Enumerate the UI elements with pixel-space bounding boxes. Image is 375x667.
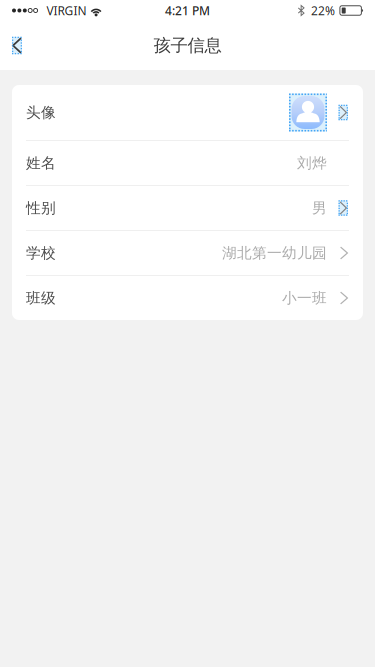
- staticText: 孩子信息: [153, 35, 221, 56]
- button[interactable]: 头像: [12, 85, 363, 140]
- button[interactable]: 姓名: [12, 141, 363, 185]
- staticText: 头像: [26, 103, 56, 121]
- button[interactable]: 性别: [12, 186, 363, 230]
- staticText: 刘烨: [297, 154, 327, 172]
- staticText: 班级: [26, 289, 56, 307]
- staticText: 4:21 PM: [165, 2, 210, 18]
- staticText: 男: [312, 199, 327, 217]
- staticText: 学校: [26, 244, 56, 262]
- button[interactable]: Back: [0, 21, 36, 70]
- staticText: VIRGIN: [47, 2, 87, 18]
- staticText: 姓名: [26, 154, 56, 172]
- staticText: 性别: [26, 199, 56, 217]
- staticText: 湖北第一幼儿园: [222, 244, 327, 262]
- button[interactable]: 班级: [12, 276, 363, 320]
- staticText: 小一班: [282, 289, 327, 307]
- staticText: 22%: [311, 2, 335, 18]
- button[interactable]: 学校: [12, 231, 363, 275]
